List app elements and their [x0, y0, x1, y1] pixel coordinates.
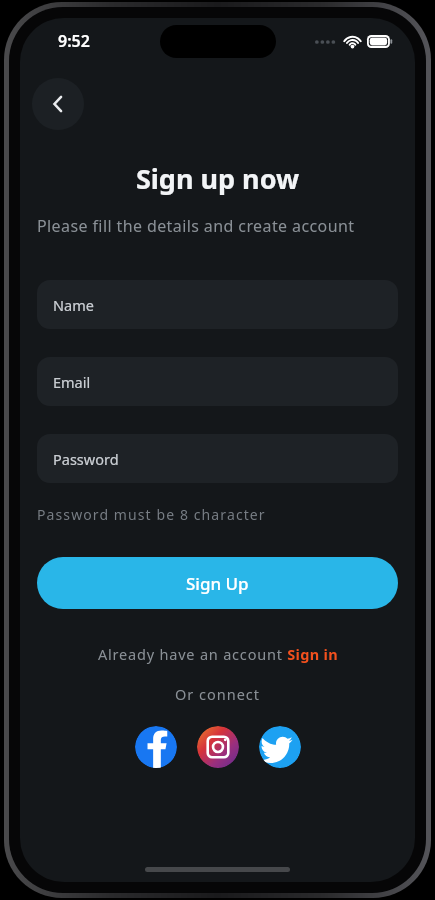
staticText: Sign Up: [186, 572, 249, 595]
staticText: 9:52: [58, 30, 90, 52]
button[interactable]: Name: [37, 280, 398, 329]
staticText: Or connect: [20, 684, 415, 704]
button[interactable]: Twitter: [259, 726, 301, 768]
staticText: Email: [53, 372, 91, 392]
staticText: Password: [53, 449, 119, 469]
button[interactable]: Already have an account Sign in: [20, 644, 415, 664]
button[interactable]: Password: [37, 434, 398, 483]
staticText: Sign up now: [20, 160, 415, 197]
button[interactable]: Sign Up: [37, 557, 398, 609]
staticText: Password must be 8 character: [37, 505, 266, 524]
button[interactable]: Instagram: [197, 726, 239, 768]
button[interactable]: Email: [37, 357, 398, 406]
staticText: Please fill the details and create accou…: [37, 215, 355, 237]
button[interactable]: Back: [32, 78, 84, 130]
button[interactable]: Facebook: [135, 726, 177, 768]
staticText: Already have an account Sign in: [98, 644, 338, 664]
staticText: Name: [53, 295, 94, 315]
